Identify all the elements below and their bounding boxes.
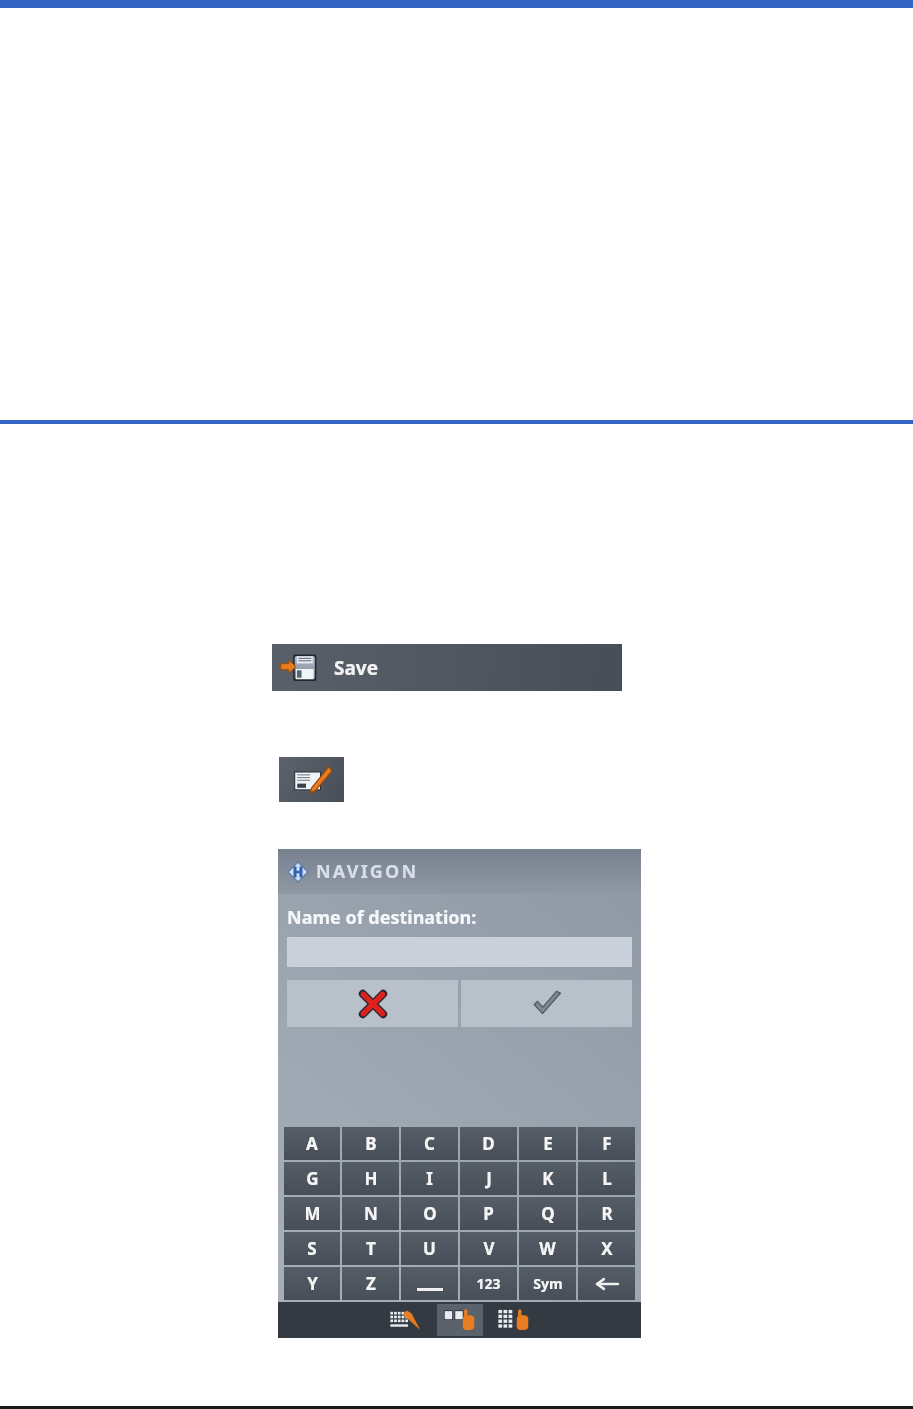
staticText: T [366, 1237, 376, 1260]
staticText: Y [307, 1272, 318, 1295]
staticText: W [539, 1237, 556, 1260]
staticText: U [423, 1237, 436, 1260]
button[interactable]: E [519, 1127, 576, 1160]
button[interactable]: A [284, 1127, 340, 1160]
staticText: H [364, 1167, 378, 1190]
button[interactable]: handwriting [383, 1304, 429, 1336]
staticText: R [601, 1202, 613, 1225]
staticText: D [482, 1132, 495, 1155]
button[interactable]: J [460, 1162, 517, 1195]
staticText: J [486, 1167, 492, 1190]
staticText: Save [334, 655, 379, 681]
staticText: Sym [533, 1274, 563, 1293]
staticText: B [365, 1132, 377, 1155]
button[interactable]: O [401, 1197, 458, 1230]
staticText: M [304, 1202, 321, 1225]
button[interactable]: K [519, 1162, 576, 1195]
staticText: 123 [476, 1274, 501, 1293]
button[interactable]: X [578, 1232, 635, 1265]
button[interactable]: I [401, 1162, 458, 1195]
button[interactable]: H [342, 1162, 399, 1195]
button[interactable]: Sym [519, 1267, 576, 1300]
button[interactable]: Save [272, 644, 622, 691]
staticText: E [543, 1132, 553, 1155]
button[interactable]: B [342, 1127, 399, 1160]
staticText: Z [366, 1272, 376, 1295]
staticText: N [364, 1202, 378, 1225]
button[interactable]: P [460, 1197, 517, 1230]
staticText: Name of destination: [287, 905, 477, 930]
button[interactable]: D [460, 1127, 517, 1160]
button[interactable]: Backspace [578, 1267, 635, 1300]
staticText: O [423, 1202, 437, 1225]
button[interactable]: T [342, 1232, 399, 1265]
button[interactable]: N [342, 1197, 399, 1230]
button[interactable]: abc [437, 1304, 483, 1336]
staticText: S [307, 1237, 317, 1260]
button[interactable]: OK [461, 980, 632, 1027]
button[interactable]: Z [342, 1267, 399, 1300]
button[interactable]: S [284, 1232, 340, 1265]
staticText: Q [541, 1202, 555, 1225]
button[interactable]: G [284, 1162, 340, 1195]
staticText: A [306, 1132, 318, 1155]
button[interactable]: Y [284, 1267, 340, 1300]
button[interactable]: W [519, 1232, 576, 1265]
button[interactable]: C [401, 1127, 458, 1160]
staticText: I [426, 1167, 433, 1190]
button[interactable]: Edit name [279, 757, 344, 802]
button[interactable]: L [578, 1162, 635, 1195]
staticText: V [483, 1237, 495, 1260]
button[interactable]: grid [491, 1304, 537, 1336]
staticText: L [602, 1167, 612, 1190]
button[interactable]: R [578, 1197, 635, 1230]
staticText: G [306, 1167, 319, 1190]
staticText: X [601, 1237, 613, 1260]
staticText: C [424, 1132, 435, 1155]
button[interactable]: M [284, 1197, 340, 1230]
button[interactable]: 123 [460, 1267, 517, 1300]
button[interactable]: Space [401, 1267, 458, 1300]
button[interactable]: Cancel [287, 980, 458, 1027]
button[interactable]: V [460, 1232, 517, 1265]
staticText: F [602, 1132, 612, 1155]
staticText: P [483, 1202, 494, 1225]
staticText: NAVIGON [316, 859, 419, 884]
button[interactable]: Q [519, 1197, 576, 1230]
button[interactable]: U [401, 1232, 458, 1265]
button[interactable]: F [578, 1127, 635, 1160]
staticText: K [542, 1167, 554, 1190]
